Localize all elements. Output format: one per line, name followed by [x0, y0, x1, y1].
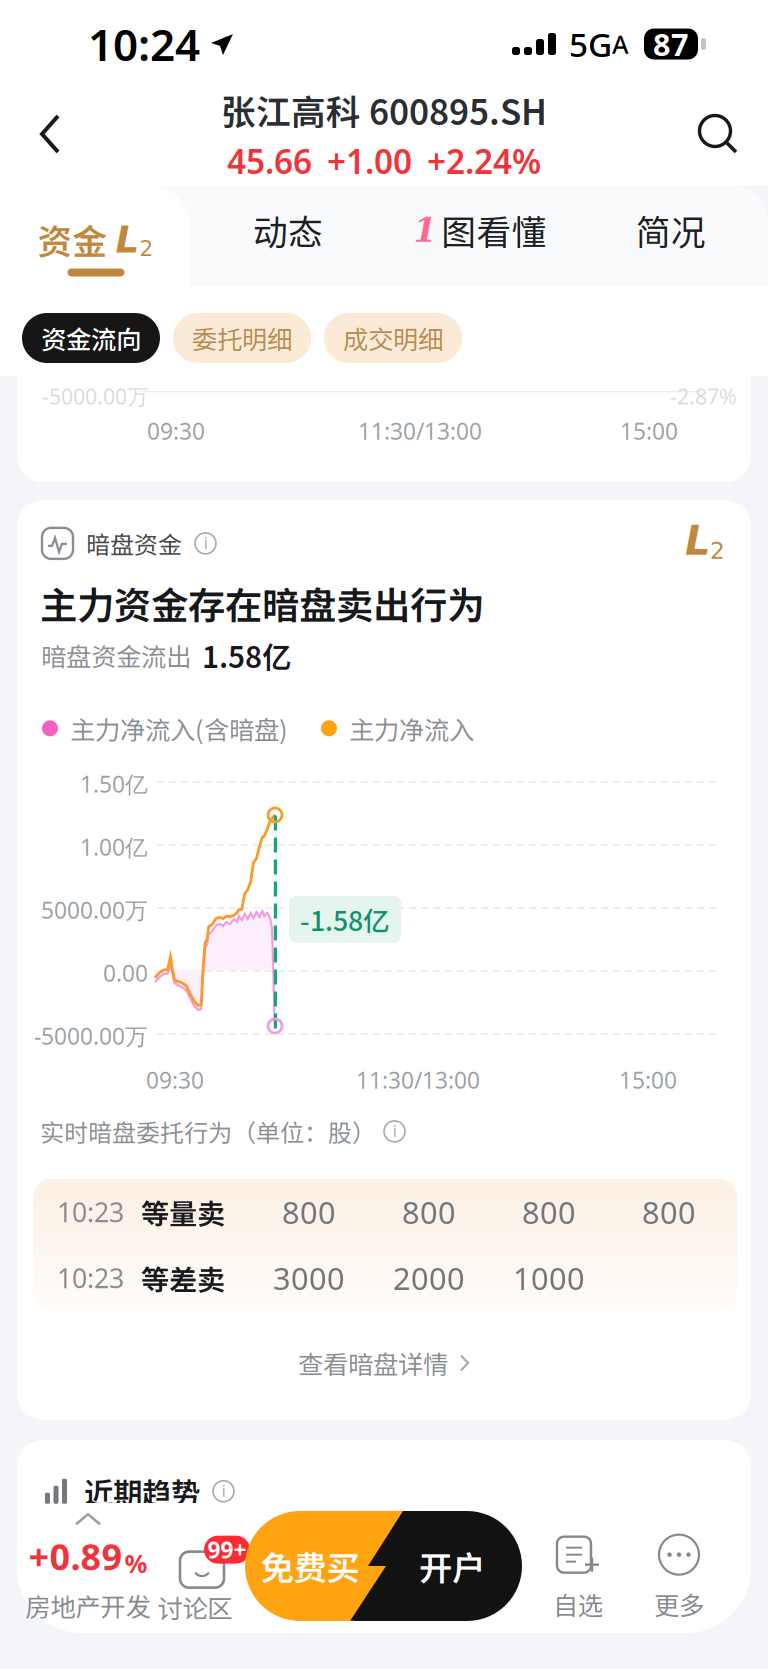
staticText: L	[115, 218, 139, 261]
staticText: 暗盘资金	[86, 526, 182, 561]
staticText: 1	[413, 210, 436, 250]
staticText: 09:30	[147, 416, 205, 446]
staticText: 800	[522, 1192, 576, 1232]
staticText: 等差卖	[141, 1258, 225, 1298]
staticText: 15:00	[619, 1065, 677, 1095]
staticText: 讨论区	[157, 1589, 232, 1625]
staticText: 800	[282, 1192, 336, 1232]
staticText: 暗盘资金流出	[41, 637, 191, 674]
button[interactable]: +0.89	[13, 1508, 163, 1628]
staticText: 15:00	[620, 416, 678, 446]
staticText: 11:30/13:00	[356, 1065, 480, 1095]
staticText: 1.58亿	[202, 634, 291, 676]
staticText: 更多	[654, 1586, 704, 1622]
staticText: 动态	[253, 205, 323, 255]
staticText: 5G	[569, 22, 612, 66]
button[interactable]: 99+	[140, 1520, 250, 1630]
staticText: 近期趋势	[84, 1470, 200, 1512]
staticText: 资金流向	[41, 320, 141, 356]
staticText: 1.50亿	[80, 769, 148, 799]
staticText: 10:24	[88, 15, 200, 73]
staticText: 09:30	[146, 1065, 204, 1095]
button[interactable]: 返回	[10, 94, 90, 174]
staticText: 图看懂	[441, 205, 546, 255]
staticText: 2000	[393, 1258, 465, 1298]
staticText: L	[685, 518, 710, 564]
staticText: 3000	[273, 1258, 345, 1298]
staticText: 实时暗盘委托行为（单位：股）	[40, 1114, 376, 1149]
staticText: +2.24%	[427, 139, 541, 183]
staticText: 87	[653, 24, 689, 64]
staticText: 10:23	[57, 1260, 124, 1296]
button[interactable]: 成交明细	[324, 313, 462, 363]
staticText: 800	[402, 1192, 456, 1232]
staticText: 2	[139, 236, 153, 261]
staticText: 0.00	[103, 958, 148, 988]
button[interactable]: 资金流向	[22, 313, 160, 363]
staticText: 开户	[419, 1542, 485, 1590]
button[interactable]: 简况	[611, 202, 731, 258]
button[interactable]: 1	[400, 202, 560, 258]
staticText: 等量卖	[141, 1192, 225, 1232]
staticText: 2	[710, 537, 725, 564]
staticText: -1.58亿	[300, 900, 390, 939]
button[interactable]: 委托明细	[173, 313, 311, 363]
staticText: 主力净流入(含暗盘)	[70, 710, 288, 747]
staticText: 委托明细	[192, 320, 292, 356]
staticText: 主力资金存在暗盘卖出行为	[40, 576, 484, 630]
staticText: +0.89	[28, 1532, 122, 1580]
button[interactable]: 开户	[382, 1506, 522, 1626]
staticText: -5000.00万	[34, 1021, 148, 1051]
staticText: 10:23	[57, 1194, 124, 1230]
staticText: +1.00	[327, 139, 412, 183]
staticText: i	[221, 1482, 225, 1500]
staticText: 1000	[513, 1258, 585, 1298]
staticText: 99+	[207, 1535, 246, 1565]
staticText: -2.87%	[670, 382, 737, 410]
button[interactable]: 更多	[624, 1526, 734, 1630]
staticText: 11:30/13:00	[358, 416, 482, 446]
staticText: i	[392, 1122, 396, 1141]
staticText: i	[203, 534, 207, 553]
staticText: 免费买	[260, 1542, 359, 1590]
staticText: 自选	[553, 1586, 603, 1622]
staticText: 房地产开发	[25, 1587, 150, 1624]
button[interactable]: 自选	[523, 1526, 633, 1630]
staticText: %	[124, 1546, 147, 1580]
button[interactable]: 免费买	[245, 1506, 375, 1626]
staticText: 45.66	[227, 139, 312, 183]
staticText: 1.00亿	[80, 832, 148, 862]
staticText: 主力净流入	[349, 710, 474, 747]
staticText: 成交明细	[343, 320, 443, 356]
staticText: 简况	[636, 205, 706, 255]
staticText: 5000.00万	[41, 895, 148, 925]
button[interactable]: 搜索	[678, 94, 758, 174]
button[interactable]: 查看暗盘详情	[17, 1328, 751, 1398]
button[interactable]: 资金	[36, 202, 156, 294]
staticText: 张江高科 600895.SH	[221, 85, 547, 135]
button[interactable]: 动态	[228, 202, 348, 258]
staticText: A	[612, 27, 629, 61]
staticText: 查看暗盘详情	[298, 1345, 448, 1381]
staticText: -5000.00万	[42, 382, 148, 410]
staticText: 资金	[37, 214, 107, 265]
staticText: 800	[642, 1192, 696, 1232]
